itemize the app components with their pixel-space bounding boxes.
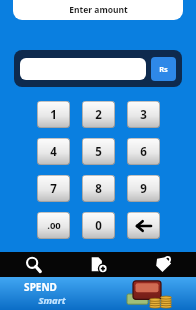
button[interactable]: Search <box>0 252 66 277</box>
staticText: Rs <box>159 64 168 74</box>
button[interactable]: 0 <box>82 212 115 239</box>
button[interactable]: Enter amount <box>13 0 183 20</box>
staticText: .00 <box>47 219 61 232</box>
button[interactable]: 8 <box>82 175 115 202</box>
button[interactable]: Backspace <box>127 212 160 239</box>
staticText: Enter amount <box>69 4 128 16</box>
button[interactable]: 7 <box>37 175 70 202</box>
staticText: Smart <box>38 294 66 307</box>
button[interactable]: Rs <box>151 57 176 81</box>
button[interactable]: 6 <box>127 138 160 165</box>
button[interactable]: 4 <box>37 138 70 165</box>
button[interactable]: 1 <box>37 101 70 128</box>
staticText: 8 <box>95 181 102 197</box>
button[interactable]: Tags <box>131 252 196 277</box>
button[interactable]: Add record <box>66 252 131 277</box>
button[interactable]: 5 <box>82 138 115 165</box>
button[interactable]: .00 <box>37 212 70 239</box>
button[interactable]: 9 <box>127 175 160 202</box>
staticText: 0 <box>95 218 102 234</box>
staticText: 2 <box>95 107 102 123</box>
staticText: 5 <box>95 144 102 160</box>
button[interactable]: 3 <box>127 101 160 128</box>
staticText: 1 <box>50 107 57 123</box>
staticText: 4 <box>50 144 57 160</box>
staticText: SPEND <box>24 280 57 294</box>
staticText: 7 <box>50 181 57 197</box>
staticText: 3 <box>140 107 147 123</box>
button[interactable]: 2 <box>82 101 115 128</box>
staticText: 9 <box>140 181 147 197</box>
button[interactable]: Amount field <box>20 58 146 80</box>
staticText: 6 <box>140 144 147 160</box>
